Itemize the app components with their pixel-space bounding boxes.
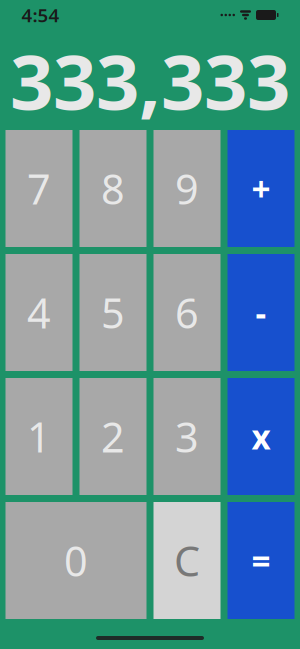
staticText: 333,333	[10, 29, 290, 130]
button[interactable]: 8	[79, 130, 146, 247]
button[interactable]: 7	[5, 130, 72, 247]
button[interactable]: 4	[5, 254, 72, 371]
staticText: 9	[175, 161, 199, 216]
button[interactable]: 3	[153, 378, 220, 495]
button[interactable]: 2	[79, 378, 146, 495]
button[interactable]: 1	[5, 378, 72, 495]
button[interactable]: 6	[153, 254, 220, 371]
button[interactable]: 9	[153, 130, 220, 247]
staticText: 2	[101, 409, 125, 464]
staticText: 3	[175, 409, 199, 464]
button[interactable]: +	[227, 130, 294, 247]
staticText: 0	[64, 533, 88, 588]
staticText: +	[251, 166, 270, 211]
staticText: 1	[27, 409, 51, 464]
staticText: 7	[27, 161, 51, 216]
button[interactable]: 5	[79, 254, 146, 371]
staticText: -	[255, 290, 266, 335]
button[interactable]: x	[227, 378, 294, 495]
staticText: x	[251, 414, 270, 459]
staticText: 5	[101, 285, 125, 340]
button[interactable]: C	[153, 502, 220, 619]
button[interactable]: =	[227, 502, 294, 619]
button[interactable]: -	[227, 254, 294, 371]
staticText: 4	[27, 285, 51, 340]
staticText: 6	[175, 285, 199, 340]
staticText: C	[174, 533, 200, 588]
button[interactable]: 0	[5, 502, 146, 619]
staticText: =	[251, 538, 270, 583]
staticText: 4:54	[21, 3, 59, 27]
staticText: 8	[101, 161, 125, 216]
